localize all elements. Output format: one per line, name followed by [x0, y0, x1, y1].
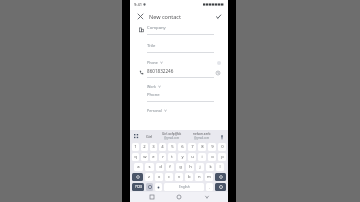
staticText: Work	[147, 84, 156, 89]
button[interactable]: p	[218, 153, 226, 161]
button[interactable]: Settings	[155, 183, 162, 191]
staticText: 8601832246	[147, 68, 174, 74]
button[interactable]: Personal	[147, 107, 221, 114]
button[interactable]: j	[196, 163, 204, 171]
button[interactable]: Phone	[147, 59, 221, 66]
button[interactable]: y	[178, 153, 186, 161]
staticText: i	[201, 154, 203, 160]
staticText: e	[152, 154, 155, 160]
button[interactable]: Emoji	[146, 183, 153, 191]
button[interactable]: s	[145, 163, 154, 171]
button[interactable]: More options	[132, 132, 141, 141]
button[interactable]: u	[188, 153, 196, 161]
button[interactable]: 5	[168, 143, 176, 151]
staticText: q	[134, 154, 137, 160]
button[interactable]: Space	[164, 183, 204, 191]
button[interactable]: ?123	[132, 183, 144, 191]
button[interactable]: Save	[213, 11, 223, 21]
staticText: u	[191, 154, 194, 160]
button[interactable]: l	[216, 163, 224, 171]
button[interactable]: Recents	[146, 192, 158, 202]
staticText: English	[179, 185, 190, 189]
staticText: 7	[191, 144, 194, 150]
button[interactable]: 3	[150, 143, 157, 151]
staticText: Phone	[147, 60, 158, 65]
button[interactable]: i	[198, 153, 206, 161]
button[interactable]: Phone	[135, 90, 221, 103]
button[interactable]: Voice input	[217, 132, 226, 141]
button[interactable]: 7	[188, 143, 196, 151]
staticText: 9	[211, 144, 214, 150]
button[interactable]: r	[159, 153, 166, 161]
button[interactable]: h	[186, 163, 194, 171]
button[interactable]: .	[206, 183, 213, 191]
button[interactable]: w	[141, 153, 148, 161]
staticText: Title	[147, 43, 156, 49]
staticText: w	[143, 154, 147, 160]
staticText: 2	[143, 144, 146, 150]
button[interactable]: 6	[178, 143, 186, 151]
button[interactable]: Girl.oxfp@bk	[157, 132, 187, 140]
button[interactable]: n	[195, 173, 203, 181]
staticText: 4	[161, 144, 164, 150]
button[interactable]: 4	[159, 143, 166, 151]
button[interactable]: 8601832246	[135, 66, 221, 79]
button[interactable]: Close	[135, 11, 145, 21]
staticText: Company	[147, 25, 166, 31]
button[interactable]: x	[155, 173, 163, 181]
button[interactable]: k	[206, 163, 214, 171]
button[interactable]: 2	[141, 143, 148, 151]
staticText: z	[148, 174, 150, 180]
staticText: nelson.serb	[193, 132, 211, 136]
staticText: Girl.oxfp@bk	[162, 132, 182, 136]
staticText: h	[189, 164, 192, 170]
staticText: x	[158, 174, 161, 180]
staticText: 1	[134, 144, 137, 150]
button[interactable]: 8	[198, 143, 206, 151]
staticText: j	[199, 164, 201, 170]
button[interactable]: o	[208, 153, 216, 161]
staticText: d	[159, 164, 162, 170]
staticText: k	[209, 164, 212, 170]
button[interactable]: a	[134, 163, 143, 171]
button[interactable]: 0	[218, 143, 226, 151]
button[interactable]: Work	[147, 83, 221, 90]
button[interactable]: c	[165, 173, 173, 181]
button[interactable]: nelson.serb	[187, 132, 217, 140]
button[interactable]: b	[185, 173, 193, 181]
staticText: 8	[201, 144, 204, 150]
button[interactable]: Girl	[141, 134, 157, 139]
button[interactable]: e	[150, 153, 157, 161]
button[interactable]: v	[175, 173, 183, 181]
button[interactable]: Home	[173, 192, 185, 202]
button[interactable]: m	[205, 173, 213, 181]
staticText: 3	[152, 144, 155, 150]
staticText: y	[181, 154, 184, 160]
button[interactable]: Back	[201, 192, 213, 202]
button[interactable]: Enter	[215, 183, 226, 191]
button[interactable]: 9	[208, 143, 216, 151]
staticText: Phone	[147, 92, 160, 98]
button[interactable]: t	[168, 153, 176, 161]
button[interactable]: f	[166, 163, 174, 171]
button[interactable]: Backspace	[215, 173, 226, 181]
staticText: @gmail.com	[194, 136, 210, 140]
staticText: 9:41	[134, 2, 142, 7]
button[interactable]: z	[145, 173, 153, 181]
staticText: f	[169, 164, 171, 170]
staticText: n	[198, 174, 201, 180]
button[interactable]: d	[156, 163, 164, 171]
staticText: @gmail.com	[164, 136, 180, 140]
button[interactable]: q	[132, 153, 139, 161]
button[interactable]: g	[176, 163, 184, 171]
button[interactable]: Title	[135, 41, 221, 54]
button[interactable]: Shift	[132, 173, 143, 181]
staticText: New contact	[149, 13, 181, 20]
staticText: Personal	[147, 108, 162, 113]
staticText: r	[162, 154, 164, 160]
staticText: v	[178, 174, 181, 180]
button[interactable]: Company	[135, 23, 221, 36]
staticText: ?123	[135, 185, 142, 189]
button[interactable]: 1	[132, 143, 139, 151]
staticText: .	[209, 185, 211, 190]
